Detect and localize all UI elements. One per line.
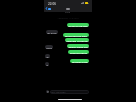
staticText: 22:06 [48,2,56,6]
staticText: its been a min [72,60,88,63]
staticText: ok [46,63,49,66]
staticText: Ok im on my way [68,24,88,27]
button[interactable]: i was like 10 min out [65,38,89,42]
staticText: i was like 10 min out [66,39,89,42]
staticText: Kylie [65,11,71,14]
button[interactable]: Back to conversations [46,7,51,10]
staticText: im in my room [46,31,58,34]
button[interactable]: almost home now [67,44,89,48]
staticText: Yesterday 11:04 PM [44,17,92,20]
staticText: what you up to [70,51,87,54]
staticText: come up [45,46,53,49]
button[interactable]: ok [45,62,49,66]
staticText: almost home now [68,45,89,48]
staticText: nah [45,55,50,58]
button[interactable]: Text Message [50,90,89,94]
button[interactable]: im in my room [46,30,58,34]
button[interactable]: come up [45,45,53,49]
button[interactable]: nah [45,54,50,58]
button[interactable]: what you up to [68,50,89,54]
button[interactable]: its been a min [70,59,89,63]
button[interactable]: ok you left the door open [63,33,89,37]
button[interactable]: Add attachment [46,90,49,93]
staticText: ok you left the door open [63,34,89,37]
button[interactable]: Ok im on my way [67,23,89,27]
staticText: Text Message [51,91,66,94]
